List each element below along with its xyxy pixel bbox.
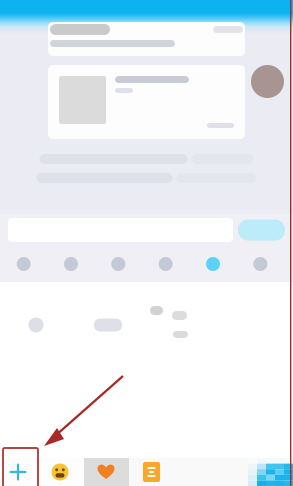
button[interactable]: Emoji xyxy=(36,458,84,486)
button[interactable]: Recent sticker 2 xyxy=(72,302,144,348)
button[interactable]: Stickers xyxy=(129,458,174,486)
button[interactable] xyxy=(48,22,245,56)
button[interactable]: Recent sticker 1 xyxy=(0,302,72,348)
button[interactable] xyxy=(48,65,245,139)
button[interactable]: Recent sticker 3 xyxy=(144,302,216,348)
button[interactable]: Favourites xyxy=(84,458,129,486)
button[interactable]: Add sticker pack xyxy=(0,458,36,486)
button[interactable]: Tool 5 xyxy=(189,246,237,282)
button[interactable]: Send xyxy=(238,219,285,240)
button[interactable]: Tool 2 xyxy=(47,246,95,282)
button[interactable]: Profile photo xyxy=(251,65,284,98)
button[interactable]: Tool 3 xyxy=(95,246,142,282)
button[interactable]: Tool 4 xyxy=(142,246,189,282)
button[interactable]: Tool 6 xyxy=(237,246,284,282)
button[interactable]: Tool 1 xyxy=(0,246,47,282)
